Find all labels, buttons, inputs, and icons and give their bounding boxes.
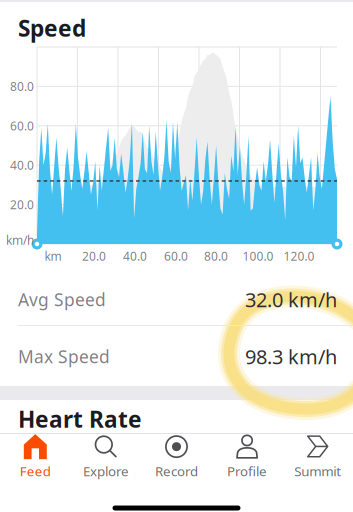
staticText: 40.0	[10, 157, 34, 173]
button[interactable]: Profile	[212, 428, 282, 486]
staticText: Explore	[83, 462, 129, 480]
staticText: 80.0	[10, 78, 34, 94]
staticText: 40.0	[123, 248, 147, 264]
staticText: Record	[155, 462, 198, 480]
staticText: Avg Speed	[18, 288, 106, 311]
button[interactable]: Record	[141, 428, 212, 486]
staticText: Max Speed	[18, 345, 110, 368]
button[interactable]: Feed	[0, 428, 71, 486]
staticText: 20.0	[10, 197, 34, 212]
staticText: 32.0 km/h	[245, 286, 337, 313]
button[interactable]: Explore	[71, 428, 141, 486]
staticText: 60.0	[164, 248, 188, 264]
staticText: Heart Rate	[18, 404, 142, 434]
button[interactable]: Avg Speed	[0, 271, 353, 328]
staticText: 20.0	[82, 248, 106, 264]
staticText: Feed	[20, 462, 51, 480]
staticText: 60.0	[10, 118, 34, 134]
staticText: Speed	[18, 13, 86, 43]
staticText: Summit	[294, 462, 341, 480]
staticText: Profile	[227, 462, 267, 480]
staticText: 98.3 km/h	[245, 343, 337, 370]
staticText: km/h	[6, 232, 34, 248]
button[interactable]: Summit	[282, 428, 353, 486]
button[interactable]: Max Speed	[0, 328, 353, 385]
staticText: 120.0	[283, 248, 314, 264]
staticText: 80.0	[204, 248, 228, 264]
staticText: 100.0	[242, 248, 273, 264]
staticText: km	[44, 248, 61, 264]
